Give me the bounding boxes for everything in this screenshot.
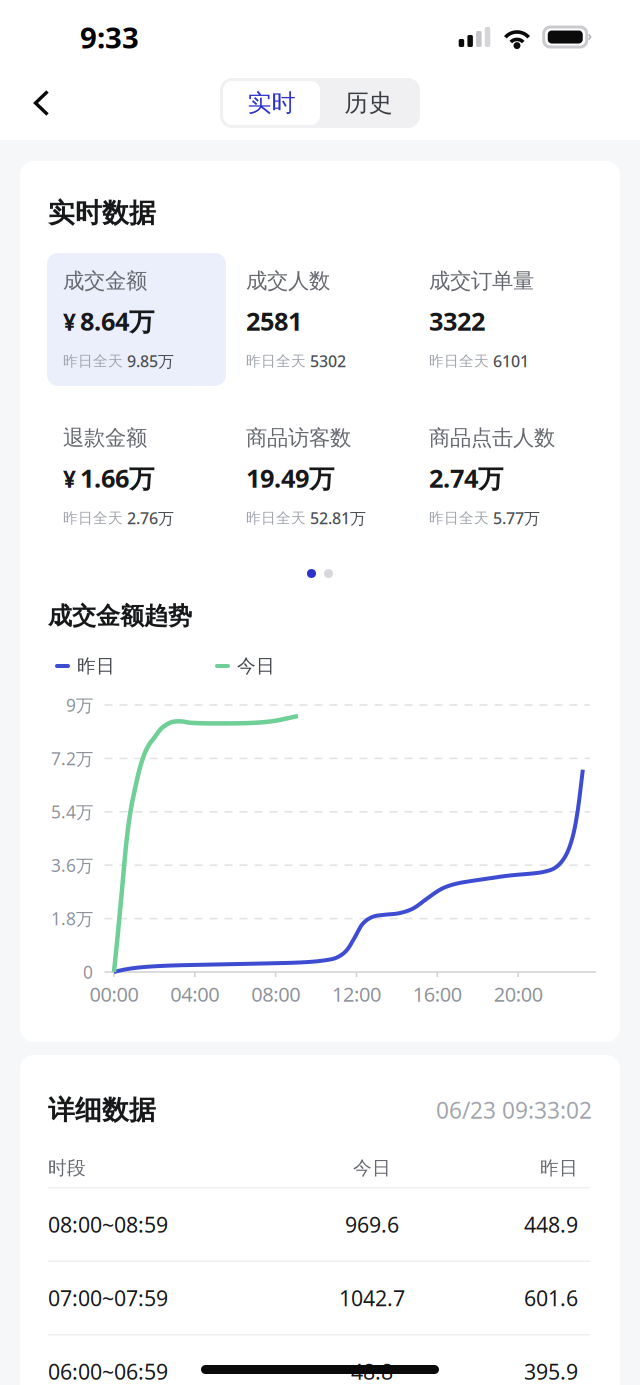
button[interactable]: 实时 xyxy=(223,81,320,125)
staticText: 昨日全天 xyxy=(246,352,306,370)
staticText: 2.76万 xyxy=(127,507,174,529)
staticText: 5.4万 xyxy=(51,800,93,823)
staticText: 1.8万 xyxy=(51,907,93,930)
staticText: 0 xyxy=(83,960,93,983)
staticText: 08:00~08:59 xyxy=(48,1210,168,1239)
button[interactable]: 返回 xyxy=(0,70,73,136)
staticText: 昨日全天 xyxy=(63,352,123,370)
staticText: 16:00 xyxy=(413,981,462,1007)
staticText: 商品点击人数 xyxy=(429,425,555,451)
staticText: 08:00 xyxy=(251,981,300,1007)
staticText: ¥ xyxy=(63,307,76,337)
staticText: 5.77万 xyxy=(493,507,540,529)
button[interactable]: 08:00~08:59 xyxy=(20,1188,620,1260)
staticText: 2581 xyxy=(246,304,302,338)
staticText: 昨日全天 xyxy=(63,509,123,527)
staticText: 601.6 xyxy=(524,1284,578,1312)
staticText: 48.8 xyxy=(351,1357,393,1385)
staticText: 52.81万 xyxy=(310,507,366,529)
staticText: 8.64万 xyxy=(80,304,154,338)
staticText: 00:00 xyxy=(89,981,138,1007)
staticText: 昨日全天 xyxy=(429,352,489,370)
staticText: 9万 xyxy=(66,693,93,716)
staticText: 19.49万 xyxy=(246,461,334,495)
staticText: 实时数据 xyxy=(48,197,156,229)
staticText: 时段 xyxy=(48,1156,86,1179)
staticText: 969.6 xyxy=(345,1210,399,1239)
staticText: ¥ xyxy=(63,464,76,494)
staticText: 06/23 09:33:02 xyxy=(436,1095,592,1125)
staticText: 6101 xyxy=(493,350,529,372)
staticText: 历史 xyxy=(344,88,392,118)
staticText: 395.9 xyxy=(524,1357,578,1385)
button[interactable]: 成交金额 xyxy=(47,253,230,386)
staticText: 06:00~06:59 xyxy=(48,1357,168,1385)
button[interactable]: 商品点击人数 xyxy=(413,410,596,543)
button[interactable]: 退款金额 xyxy=(47,410,230,543)
staticText: 1042.7 xyxy=(339,1284,405,1312)
staticText: 成交订单量 xyxy=(429,268,534,294)
button[interactable]: 商品访客数 xyxy=(230,410,413,543)
staticText: 12:00 xyxy=(332,981,381,1007)
staticText: 昨日全天 xyxy=(246,509,306,527)
staticText: 成交金额趋势 xyxy=(48,601,192,631)
staticText: 3.6万 xyxy=(51,854,93,877)
staticText: 2.74万 xyxy=(429,461,503,495)
staticText: 详细数据 xyxy=(48,1094,156,1126)
staticText: 成交人数 xyxy=(246,268,330,294)
staticText: 1.66万 xyxy=(80,461,154,495)
staticText: 昨日 xyxy=(540,1156,578,1179)
staticText: 448.9 xyxy=(524,1210,578,1239)
button[interactable]: 成交订单量 xyxy=(413,253,596,386)
staticText: 昨日 xyxy=(77,654,115,677)
staticText: 今日 xyxy=(237,654,275,677)
staticText: 退款金额 xyxy=(63,425,147,451)
button[interactable]: 历史 xyxy=(320,81,417,125)
staticText: 3322 xyxy=(429,304,485,338)
staticText: 9.85万 xyxy=(127,350,174,372)
staticText: 9:33 xyxy=(80,17,139,56)
button[interactable]: 07:00~07:59 xyxy=(20,1262,620,1334)
staticText: 实时 xyxy=(247,88,295,118)
button[interactable]: 成交人数 xyxy=(230,253,413,386)
button[interactable]: 06:00~06:59 xyxy=(20,1335,620,1385)
staticText: 今日 xyxy=(353,1156,391,1179)
staticText: 商品访客数 xyxy=(246,425,351,451)
staticText: 昨日全天 xyxy=(429,509,489,527)
staticText: 07:00~07:59 xyxy=(48,1284,168,1312)
staticText: 5302 xyxy=(310,350,346,372)
staticText: 成交金额 xyxy=(63,268,147,294)
staticText: 20:00 xyxy=(494,981,543,1007)
staticText: 7.2万 xyxy=(51,747,93,770)
staticText: 04:00 xyxy=(170,981,219,1007)
